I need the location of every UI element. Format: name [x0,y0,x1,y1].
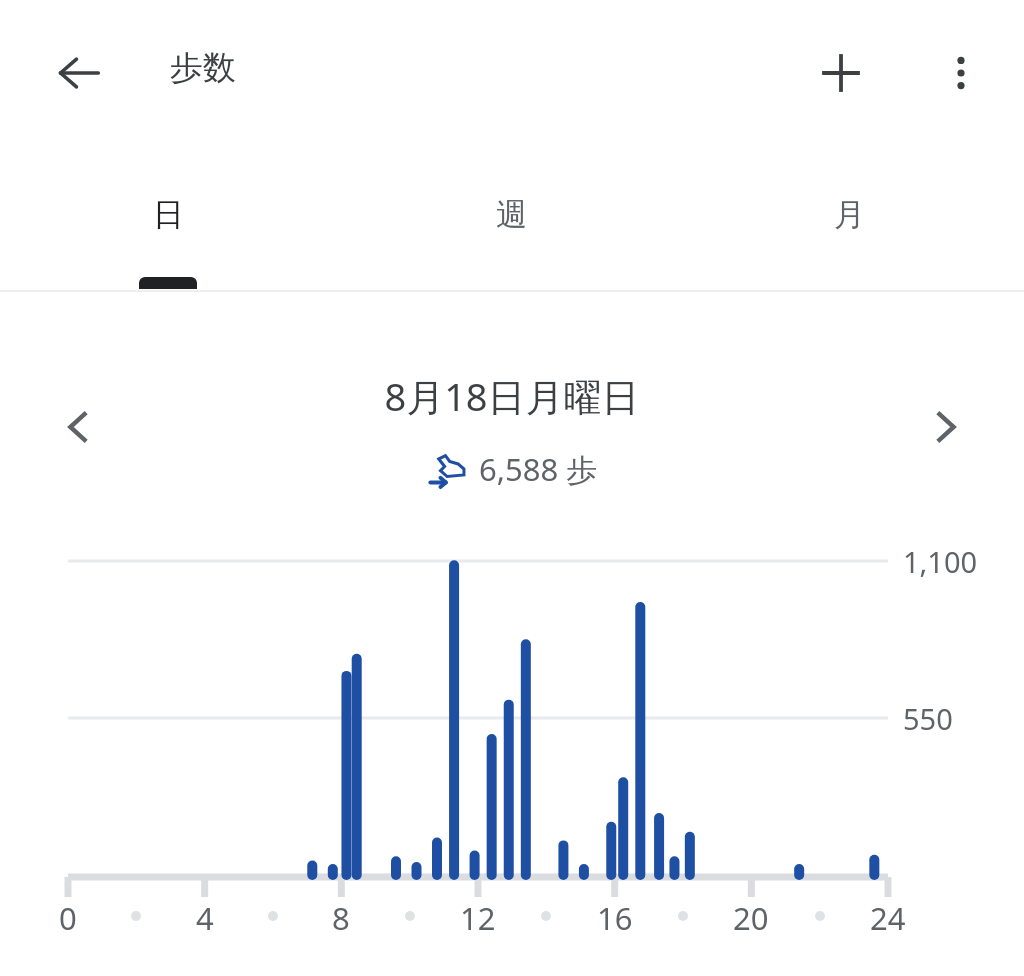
button[interactable]: 週 [401,145,621,290]
button[interactable]: 月 [739,145,959,290]
staticText: 週 [496,195,527,234]
staticText: 24 [870,897,906,939]
button[interactable]: Previous day [44,392,114,462]
staticText: 4 [196,897,214,939]
staticText: 0 [59,897,77,939]
button[interactable]: Back [44,38,114,108]
staticText: 月 [834,195,865,234]
staticText: 8 [332,897,350,939]
staticText: 6,588 歩 [479,448,598,490]
staticText: 12 [460,897,496,939]
staticText: 20 [733,897,769,939]
button[interactable]: Add [806,38,876,108]
button[interactable]: Next day [910,392,980,462]
button[interactable]: More options [926,38,996,108]
staticText: 16 [597,897,633,939]
staticText: 550 [903,699,953,738]
staticText: 1,100 [903,542,978,581]
staticText: 8月18日月曜日 [384,370,640,422]
button[interactable]: 日 [58,145,278,290]
staticText: 歩数 [170,47,236,89]
staticText: 日 [153,195,184,234]
